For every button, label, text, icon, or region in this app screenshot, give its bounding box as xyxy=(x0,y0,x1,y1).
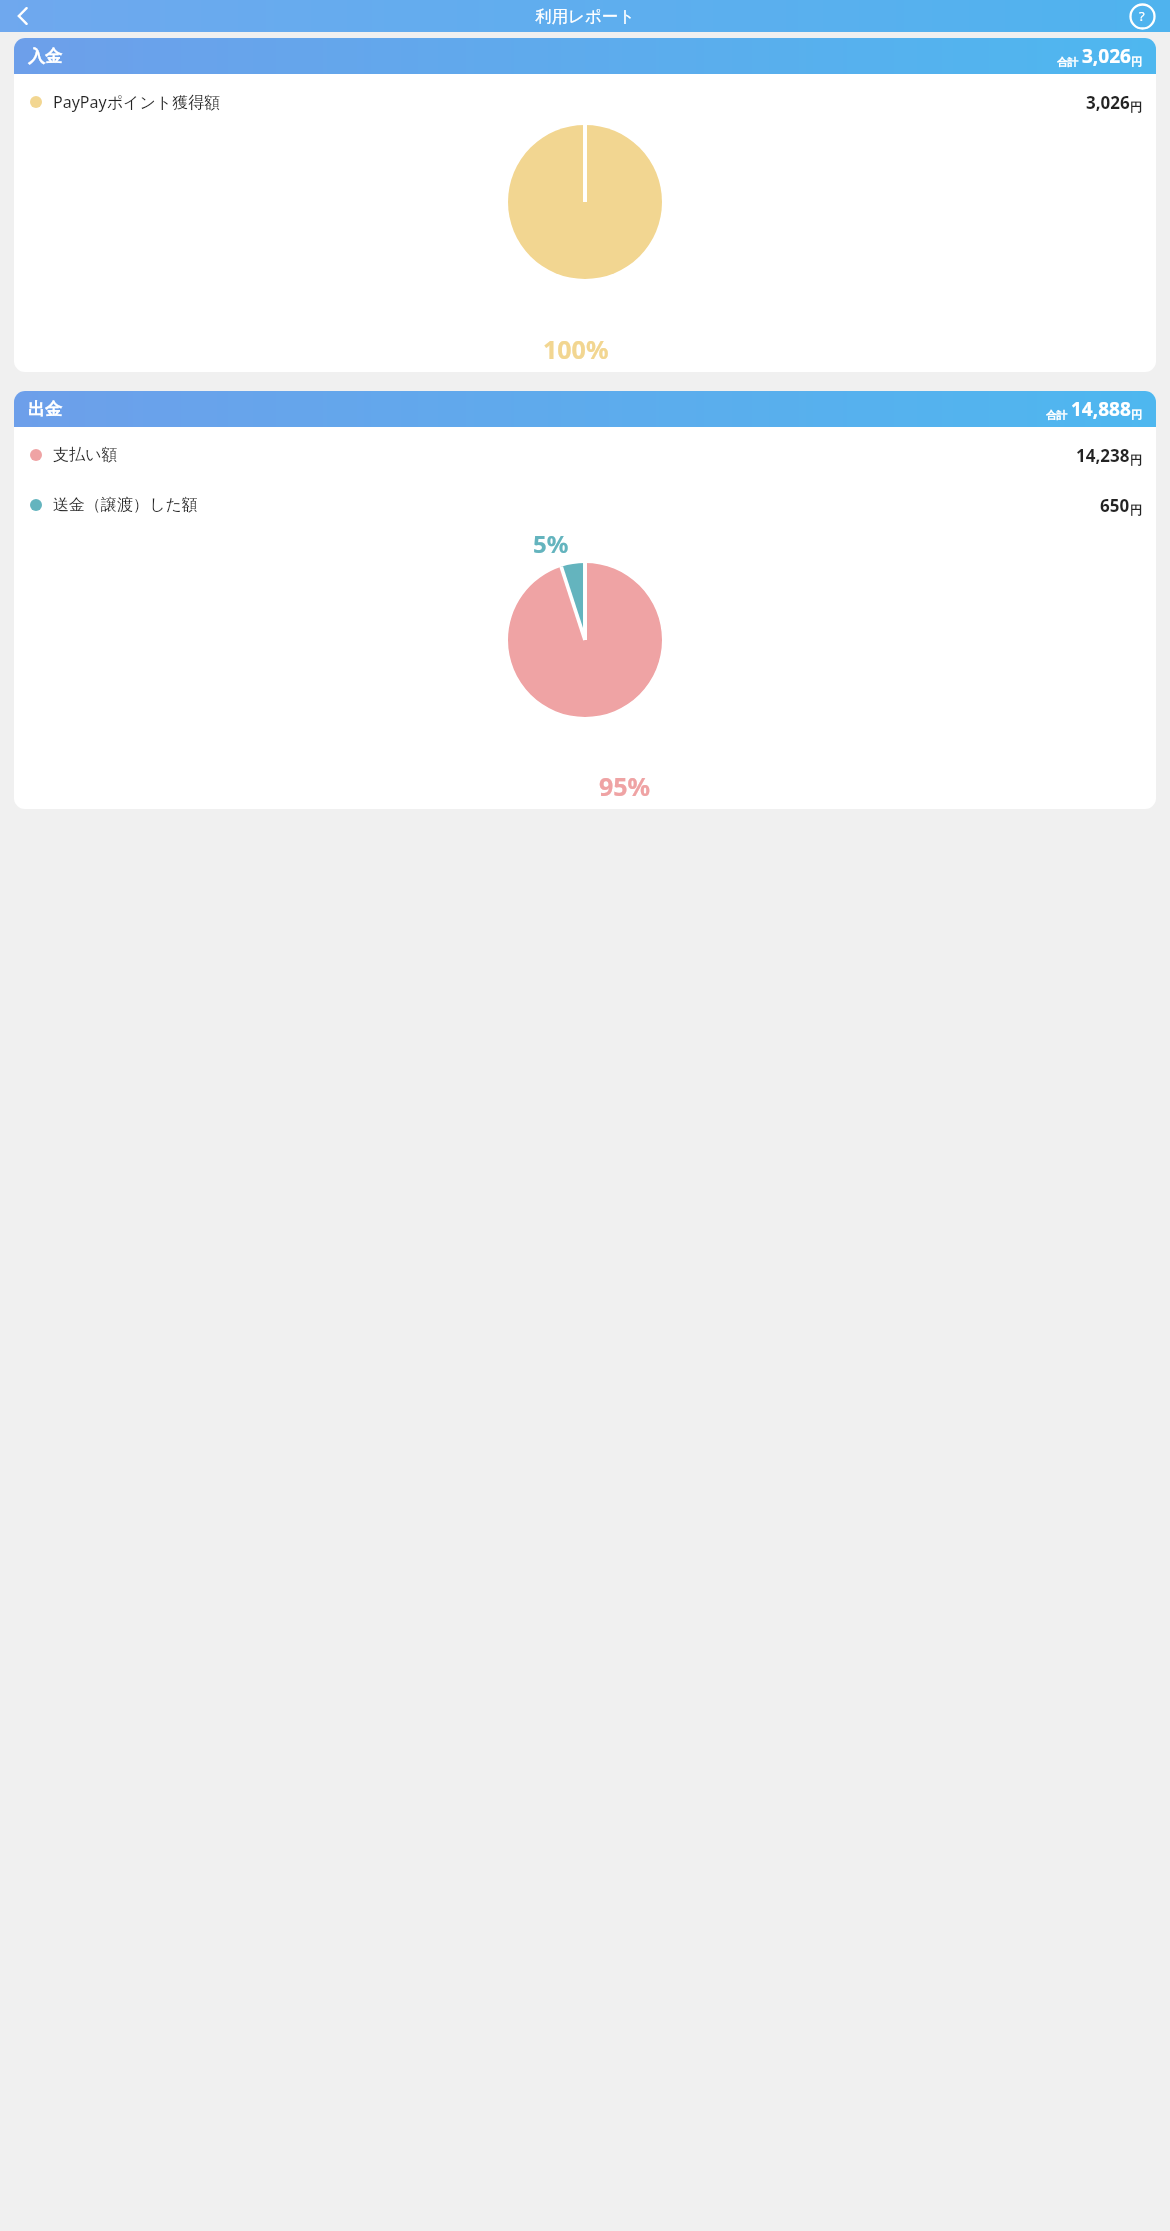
staticText: 利用レポート xyxy=(535,6,636,27)
staticText: 14,238 xyxy=(1076,444,1130,467)
staticText: PayPayポイント獲得額 xyxy=(53,91,221,113)
staticText: 650 xyxy=(1100,494,1130,517)
button[interactable]: Back xyxy=(4,0,44,32)
staticText: 円 xyxy=(1130,452,1142,467)
staticText: 3,026 xyxy=(1082,43,1131,69)
staticText: 合計 xyxy=(1057,56,1078,69)
staticText: 100% xyxy=(543,332,609,366)
staticText: 支払い額 xyxy=(53,445,118,465)
staticText: 合計 xyxy=(1046,409,1067,422)
staticText: 5% xyxy=(533,527,569,560)
staticText: 円 xyxy=(1131,55,1142,69)
staticText: 14,888 xyxy=(1071,396,1131,422)
button[interactable]: 出金 xyxy=(14,391,1156,809)
staticText: ? xyxy=(1139,7,1145,25)
staticText: 3,026 xyxy=(1086,91,1130,114)
staticText: 円 xyxy=(1130,99,1142,114)
staticText: 送金（譲渡）した額 xyxy=(53,495,198,515)
button[interactable]: 入金 xyxy=(14,38,1156,372)
button[interactable]: Help xyxy=(1122,0,1162,32)
staticText: 出金 xyxy=(28,399,62,420)
staticText: 入金 xyxy=(28,46,62,67)
staticText: 円 xyxy=(1130,502,1142,517)
staticText: 円 xyxy=(1131,408,1142,422)
staticText: 95% xyxy=(599,769,651,803)
